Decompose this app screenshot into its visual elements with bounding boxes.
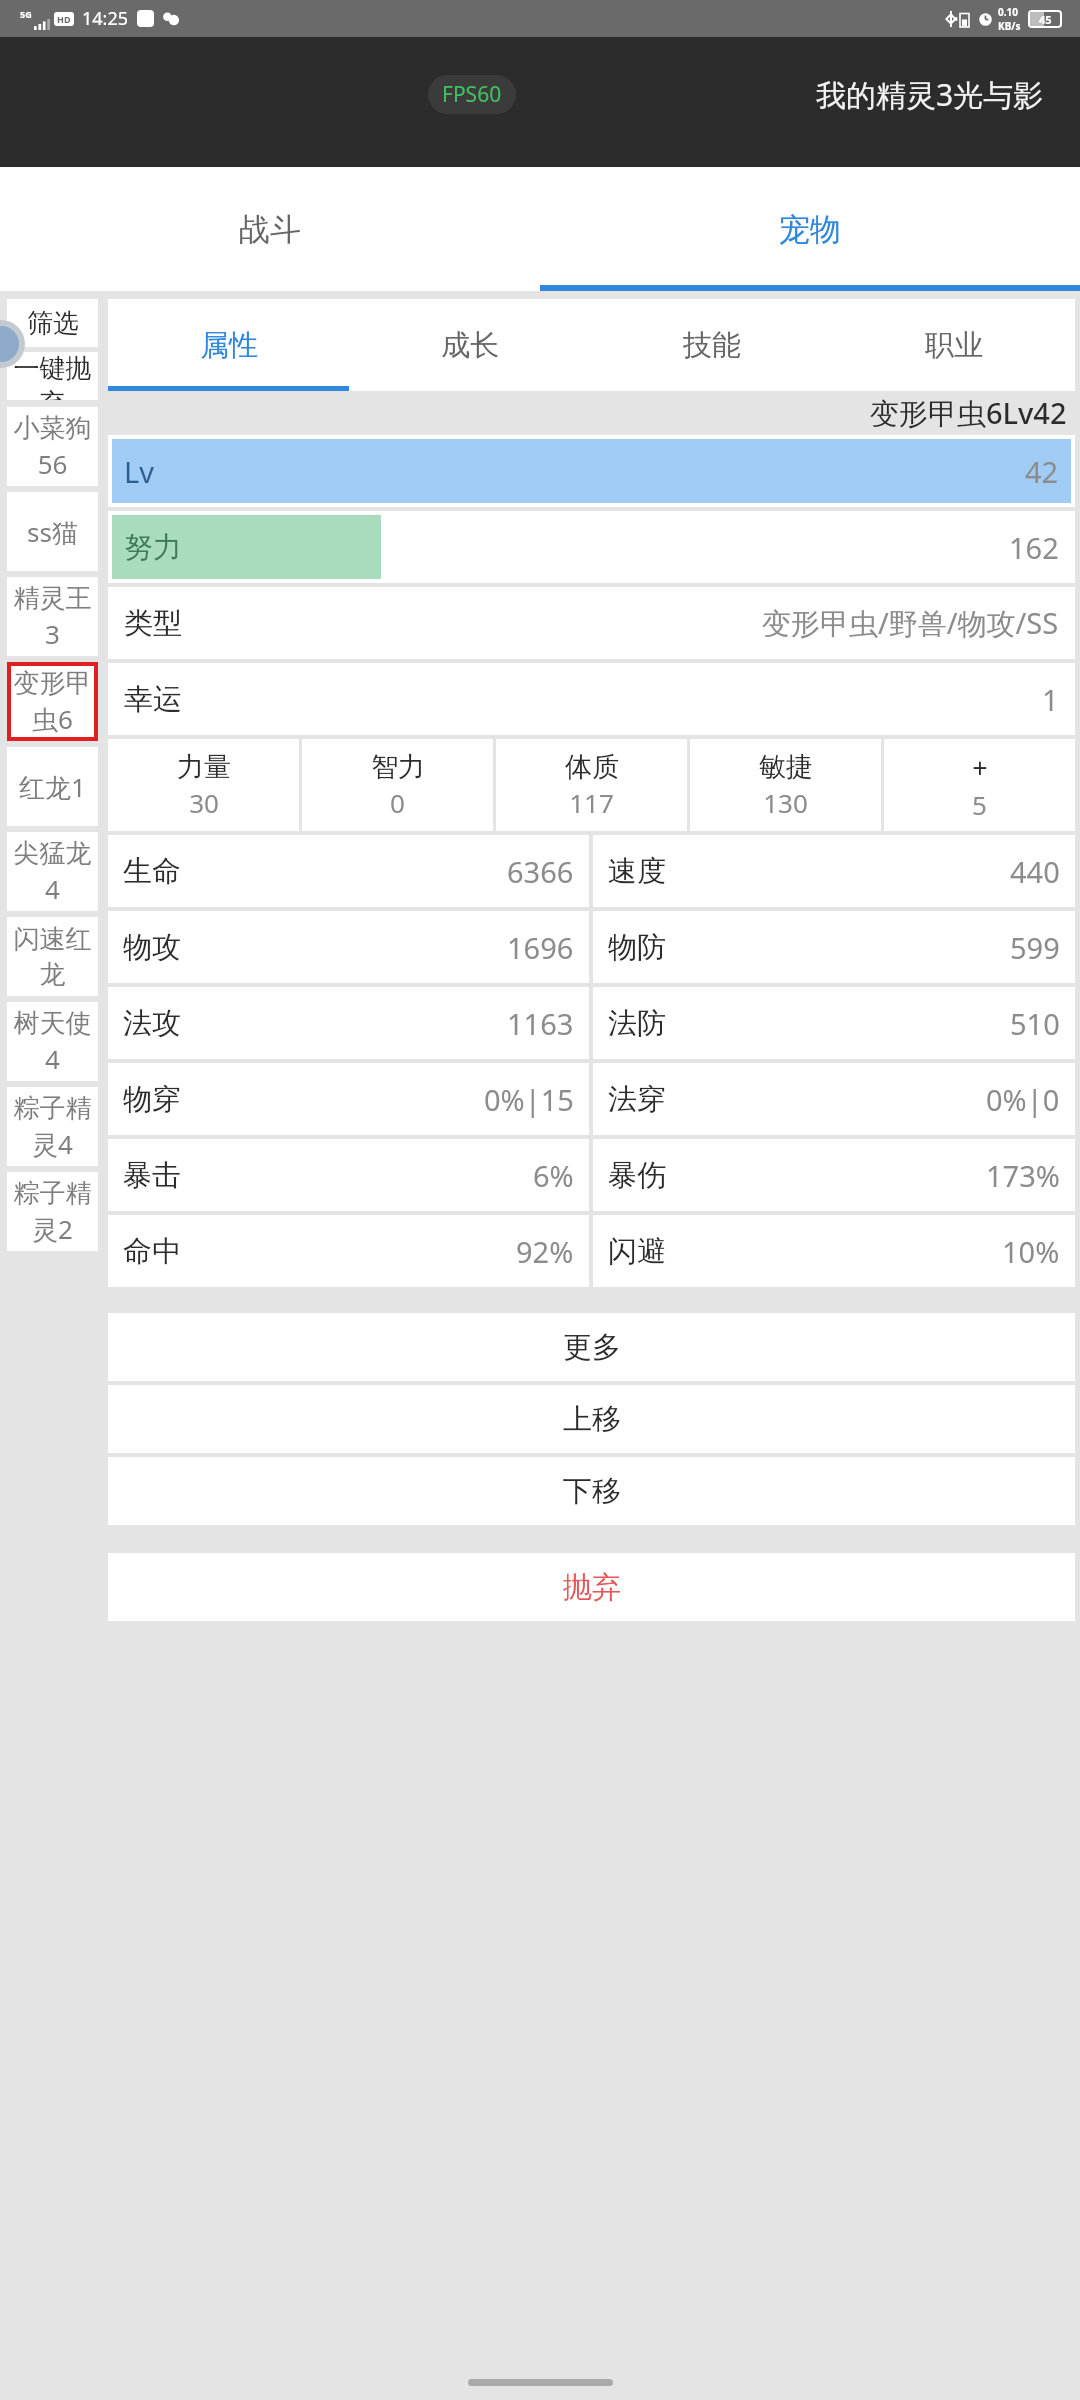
staticText: 5	[972, 787, 987, 822]
button[interactable]: 幸运	[124, 663, 1059, 735]
button[interactable]: 命中	[123, 1215, 574, 1287]
staticText: 物防	[608, 929, 666, 966]
button[interactable]: 法防	[608, 987, 1060, 1059]
staticText: 职业	[925, 327, 983, 364]
button[interactable]: 物防	[608, 911, 1060, 983]
staticText: 粽子精灵4	[7, 1092, 98, 1162]
staticText: 法攻	[123, 1005, 181, 1042]
staticText: 红龙1	[19, 769, 86, 805]
staticText: 成长	[441, 327, 499, 364]
staticText: 0	[390, 785, 405, 820]
staticText: 变形甲虫/野兽/物攻/SS	[762, 603, 1059, 643]
button[interactable]: 筛选	[7, 299, 98, 347]
button[interactable]: 闪避	[608, 1215, 1060, 1287]
staticText: 粽子精灵2	[7, 1177, 98, 1247]
button[interactable]: 生命	[123, 835, 574, 907]
staticText: Lv	[124, 452, 154, 491]
staticText: 战斗	[239, 210, 301, 249]
button[interactable]: Assistant	[0, 320, 25, 368]
staticText: 0.10	[998, 5, 1018, 19]
button[interactable]: 暴击	[123, 1139, 574, 1211]
staticText: 一键抛弃	[7, 352, 98, 400]
staticText: 45	[1039, 12, 1052, 27]
staticText: 130	[763, 785, 808, 820]
button[interactable]: 一键抛弃	[7, 352, 98, 400]
button[interactable]: 速度	[608, 835, 1060, 907]
staticText: 变形甲虫6Lv42	[870, 393, 1067, 433]
staticText: 力量	[177, 750, 231, 784]
staticText: 宠物	[779, 210, 841, 249]
staticText: 0%|0	[986, 1080, 1060, 1119]
staticText: 30	[189, 785, 219, 820]
staticText: 类型	[124, 605, 182, 642]
staticText: KB/s	[998, 19, 1021, 33]
staticText: 闪速红龙	[7, 923, 98, 991]
staticText: 精灵王3	[7, 582, 98, 651]
staticText: 1163	[507, 1004, 574, 1043]
staticText: HD	[57, 13, 71, 25]
staticText: 5G	[20, 8, 32, 20]
staticText: 法穿	[608, 1081, 666, 1118]
button[interactable]: 类型	[124, 587, 1059, 659]
button[interactable]: 法穿	[608, 1063, 1060, 1135]
button[interactable]: 暴伤	[608, 1139, 1060, 1211]
button[interactable]: 闪速红龙	[7, 917, 98, 996]
staticText: 117	[569, 785, 614, 820]
button[interactable]: 智力	[302, 739, 493, 831]
button[interactable]: 抛弃	[108, 1553, 1075, 1621]
staticText: 6%	[533, 1156, 574, 1195]
staticText: 1	[1042, 680, 1059, 719]
button[interactable]: 体质	[496, 739, 687, 831]
button[interactable]: 物攻	[123, 911, 574, 983]
staticText: 树天使4	[7, 1007, 98, 1076]
staticText: 下移	[563, 1473, 621, 1510]
button[interactable]: 粽子精灵2	[7, 1172, 98, 1251]
staticText: 599	[1010, 928, 1060, 967]
button[interactable]: 力量	[108, 739, 299, 831]
staticText: 我的精灵3光与影	[816, 74, 1044, 115]
button[interactable]: 职业	[833, 299, 1075, 391]
button[interactable]: 属性	[108, 299, 349, 391]
button[interactable]: 战斗	[0, 167, 540, 291]
staticText: 敏捷	[759, 750, 813, 784]
button[interactable]: 敏捷	[690, 739, 881, 831]
button[interactable]: 物穿	[123, 1063, 574, 1135]
button[interactable]: 尖猛龙4	[7, 832, 98, 911]
button[interactable]: 粽子精灵4	[7, 1087, 98, 1166]
button[interactable]: ss猫	[7, 492, 98, 571]
staticText: 暴击	[123, 1157, 181, 1194]
staticText: 变形甲虫6	[7, 667, 98, 737]
button[interactable]: 宠物	[540, 167, 1080, 291]
button[interactable]: Lv	[108, 435, 1075, 507]
button[interactable]: 上移	[108, 1385, 1075, 1453]
staticText: 法防	[608, 1005, 666, 1042]
staticText: 6366	[507, 852, 574, 891]
staticText: 173%	[986, 1156, 1060, 1195]
staticText: 幸运	[124, 681, 182, 718]
button[interactable]: 红龙1	[7, 747, 98, 826]
staticText: 技能	[683, 327, 741, 364]
button[interactable]: +	[884, 739, 1075, 831]
staticText: 物攻	[123, 929, 181, 966]
staticText: 体质	[565, 750, 619, 784]
staticText: ss猫	[27, 514, 78, 550]
button[interactable]: 技能	[591, 299, 833, 391]
staticText: 0%|15	[484, 1080, 574, 1119]
staticText: 92%	[516, 1232, 574, 1271]
button[interactable]: 下移	[108, 1457, 1075, 1525]
staticText: 属性	[200, 327, 258, 364]
staticText: 小菜狗56	[7, 412, 98, 481]
button[interactable]: 变形甲虫6	[7, 662, 98, 741]
button[interactable]: 更多	[108, 1313, 1075, 1381]
staticText: FPS60	[442, 80, 502, 109]
staticText: 1696	[507, 928, 574, 967]
button[interactable]: 成长	[349, 299, 591, 391]
staticText: +	[972, 749, 988, 786]
staticText: 14:25	[82, 6, 129, 31]
button[interactable]: 努力	[108, 511, 1075, 583]
button[interactable]: 小菜狗56	[7, 407, 98, 486]
button[interactable]: 树天使4	[7, 1002, 98, 1081]
staticText: 闪避	[608, 1233, 666, 1270]
button[interactable]: 法攻	[123, 987, 574, 1059]
button[interactable]: 精灵王3	[7, 577, 98, 656]
